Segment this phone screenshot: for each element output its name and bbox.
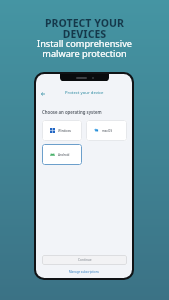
staticText: Install comprehensive malware protection	[37, 37, 132, 59]
staticText: PROTECT YOUR DEVICES	[45, 16, 124, 42]
button[interactable]: macOS	[86, 120, 127, 141]
button[interactable]: Back	[39, 90, 47, 97]
button[interactable]: Continue	[42, 255, 127, 265]
button[interactable]: Windows	[42, 120, 82, 141]
staticText: Continue	[78, 258, 92, 262]
staticText: Protect your device	[65, 90, 104, 96]
button[interactable]: Android	[42, 144, 82, 165]
staticText: Choose an operating system	[42, 109, 102, 115]
staticText: macOS	[102, 129, 113, 133]
staticText: Android	[58, 153, 70, 157]
staticText: Windows	[58, 129, 72, 133]
button[interactable]: Manage subscriptions	[69, 270, 99, 274]
